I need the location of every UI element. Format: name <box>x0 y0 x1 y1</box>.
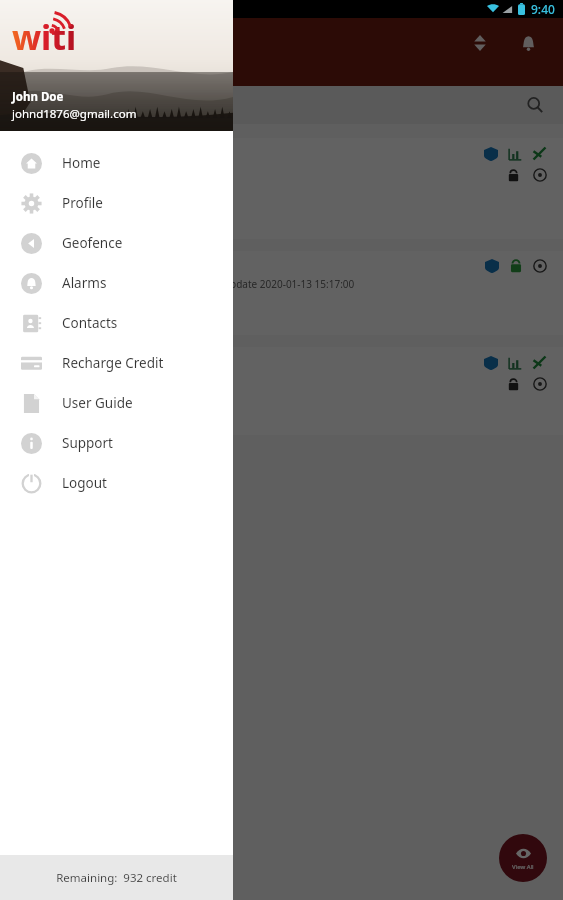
staticText: x Gum Valley, Fremantle, Western Austral… <box>10 209 222 223</box>
staticText: Recharge Credit <box>62 354 164 372</box>
staticText: Support <box>62 434 113 452</box>
staticText: Product <box>12 58 57 74</box>
button[interactable]: Product <box>6 54 82 78</box>
button[interactable]: Alarms <box>0 263 233 303</box>
staticText: Contacts <box>62 314 118 332</box>
button[interactable] <box>0 86 563 124</box>
button[interactable]: Recharge Credit <box>0 343 233 383</box>
staticText: User Guide <box>62 394 133 412</box>
button[interactable]: Live <box>120 54 174 78</box>
button[interactable]: Remaining: 932 credit <box>0 855 233 900</box>
staticText: witi <box>12 14 77 60</box>
staticText: Geofence <box>62 234 123 252</box>
staticText: Logout <box>62 474 107 492</box>
button[interactable]: User Guide <box>0 383 233 423</box>
staticText: 3 <box>159 61 164 71</box>
staticText: Live <box>126 58 149 74</box>
staticText: John Doe <box>12 89 64 105</box>
button[interactable]: Notifications <box>511 26 545 60</box>
button[interactable]: View All <box>499 834 547 882</box>
button[interactable]: Contacts <box>0 303 233 343</box>
staticText: Alarms <box>62 274 107 292</box>
button[interactable]: Logout <box>0 463 233 503</box>
button[interactable]: Home <box>0 143 233 183</box>
staticText: Remaining: 932 credit <box>56 870 177 886</box>
button[interactable]: Western Australia, Australia <box>0 347 563 435</box>
staticText: ields WA 6210, Australia <box>10 305 128 319</box>
button[interactable]: Last update 2020-01-13 15:17:00 <box>0 251 563 335</box>
button[interactable]: Sort <box>463 26 497 60</box>
staticText: Western Australia, Australia <box>10 405 147 419</box>
staticText: Last update 2020-01-13 15:17:00 <box>202 277 355 291</box>
staticText: View All <box>512 863 534 871</box>
staticText: Profile <box>62 194 103 212</box>
button[interactable]: Geofence <box>0 223 233 263</box>
button[interactable]: Profile <box>0 183 233 223</box>
staticText: johnd1876@gmail.com <box>12 106 137 122</box>
staticText: 20 <box>65 61 74 71</box>
staticText: 94% <box>83 188 105 203</box>
button[interactable]: 94% <box>0 138 563 239</box>
button[interactable]: Support <box>0 423 233 463</box>
staticText: 9:40 <box>531 1 555 17</box>
staticText: Home <box>62 154 101 172</box>
